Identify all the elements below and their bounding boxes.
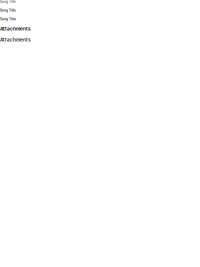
staticText: Song Title [0,17,16,21]
staticText: Song Title [0,8,16,12]
staticText: Attachments [0,37,31,43]
staticText: Song Title [0,0,16,3]
staticText: Attachments [0,26,31,32]
